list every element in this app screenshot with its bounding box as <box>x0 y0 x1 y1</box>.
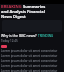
staticText: BREAKING <box>1 4 22 9</box>
staticText: Lorem ipsum dolor sit amet consectetur <box>1 69 58 72</box>
staticText: Today 12:45 <box>1 39 18 43</box>
staticText: and Analysis Financial News Digest <box>1 9 45 19</box>
staticText: TRENDING <box>38 34 54 38</box>
staticText: Summaries <box>23 4 46 9</box>
button[interactable] <box>1 45 7 48</box>
staticText: Lorem ipsum dolor sit amet consectetur <box>1 54 58 58</box>
staticText: Why is the BBC news? <box>1 33 37 38</box>
staticText: Lorem ipsum dolor sit amet consectetur <box>1 49 58 53</box>
staticText: Lorem ipsum dolor sit amet consectetur <box>1 59 58 63</box>
staticText: Lorem ipsum dolor sit amet consectetur <box>1 64 58 68</box>
